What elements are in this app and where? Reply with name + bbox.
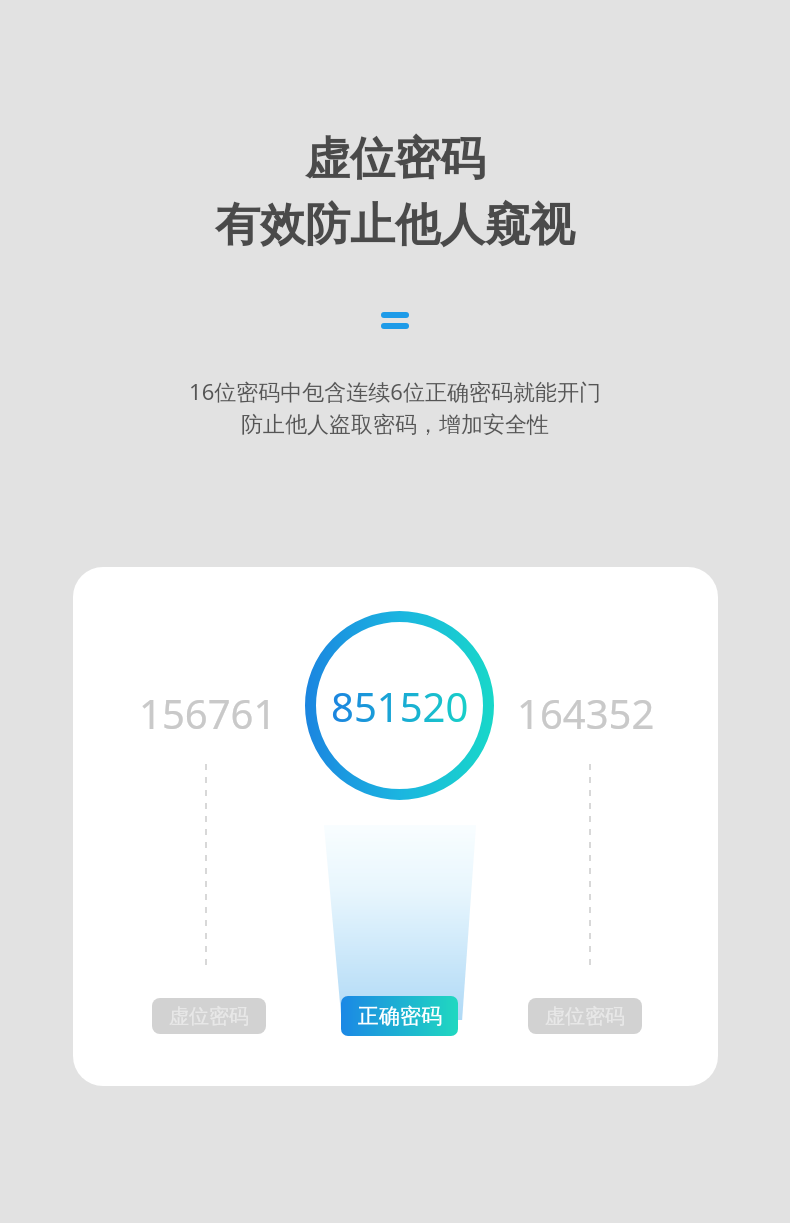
button[interactable]: 虚位密码 — [528, 998, 642, 1034]
staticText: 虚位密码 — [169, 1004, 249, 1029]
staticText: 防止他人盗取密码，增加安全性 — [241, 411, 549, 439]
staticText: 虚位密码 — [305, 131, 485, 188]
staticText: 164352 — [517, 686, 655, 732]
button[interactable]: 虚位密码 — [152, 998, 266, 1034]
staticText: 156761 — [139, 686, 277, 732]
staticText: 虚位密码 — [545, 1004, 625, 1029]
staticText: 有效防止他人窥视 — [215, 197, 575, 254]
staticText: 851520 — [331, 679, 469, 733]
staticText: 正确密码 — [358, 1003, 442, 1029]
staticText: 16位密码中包含连续6位正确密码就能开门 — [189, 376, 601, 406]
button[interactable]: 正确密码 — [341, 996, 458, 1036]
